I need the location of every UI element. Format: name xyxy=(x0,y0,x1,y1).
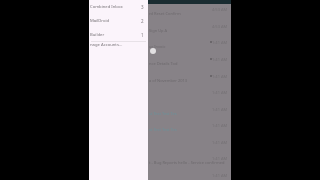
staticText: 4:53 AM xyxy=(212,7,228,12)
staticText: t - Bug Reports hello - Service confirme… xyxy=(149,160,225,165)
button[interactable]: Combined Inbox xyxy=(89,0,148,14)
staticText: Builder xyxy=(90,32,141,38)
staticText: 1:41 AM xyxy=(212,156,228,161)
staticText: nce Details Tod xyxy=(149,61,178,66)
staticText: 1:41 AM xyxy=(212,107,228,112)
staticText: 1:41 AM xyxy=(212,57,228,62)
staticText: ur Invoic xyxy=(149,44,166,49)
staticText: 1:41 AM xyxy=(212,40,228,45)
staticText: a of November 2013 xyxy=(149,78,188,83)
staticText: Sign Up A xyxy=(149,28,168,33)
staticText: 1:41 AM xyxy=(212,173,228,178)
staticText: rd Reset Confirm xyxy=(149,11,181,16)
staticText: 1:41 AM xyxy=(212,140,228,145)
staticText: 4:53 AM xyxy=(212,24,228,29)
staticText: 2 xyxy=(141,18,144,24)
staticText: st Test Test Tes xyxy=(149,127,177,132)
button[interactable]: 1:41 AM xyxy=(148,73,231,90)
staticText: 1 xyxy=(141,32,144,38)
button[interactable]: Builder xyxy=(89,28,148,42)
button[interactable]: MailDroid xyxy=(89,14,148,28)
button[interactable]: 1:41 AM xyxy=(148,155,231,172)
button[interactable]: 1:41 AM xyxy=(148,39,231,56)
button[interactable]: nage Accounts... xyxy=(89,40,148,49)
staticText: Combined Inbox xyxy=(90,4,141,10)
staticText: 3 xyxy=(141,4,144,10)
staticText: 1:41 AM xyxy=(212,90,228,95)
staticText: st Test Test Tes xyxy=(149,111,177,116)
staticText: 1:41 AM xyxy=(212,74,228,79)
staticText: nage Accounts... xyxy=(90,42,123,48)
staticText: 1:41 AM xyxy=(212,123,228,128)
staticText: MailDroid xyxy=(90,18,141,24)
